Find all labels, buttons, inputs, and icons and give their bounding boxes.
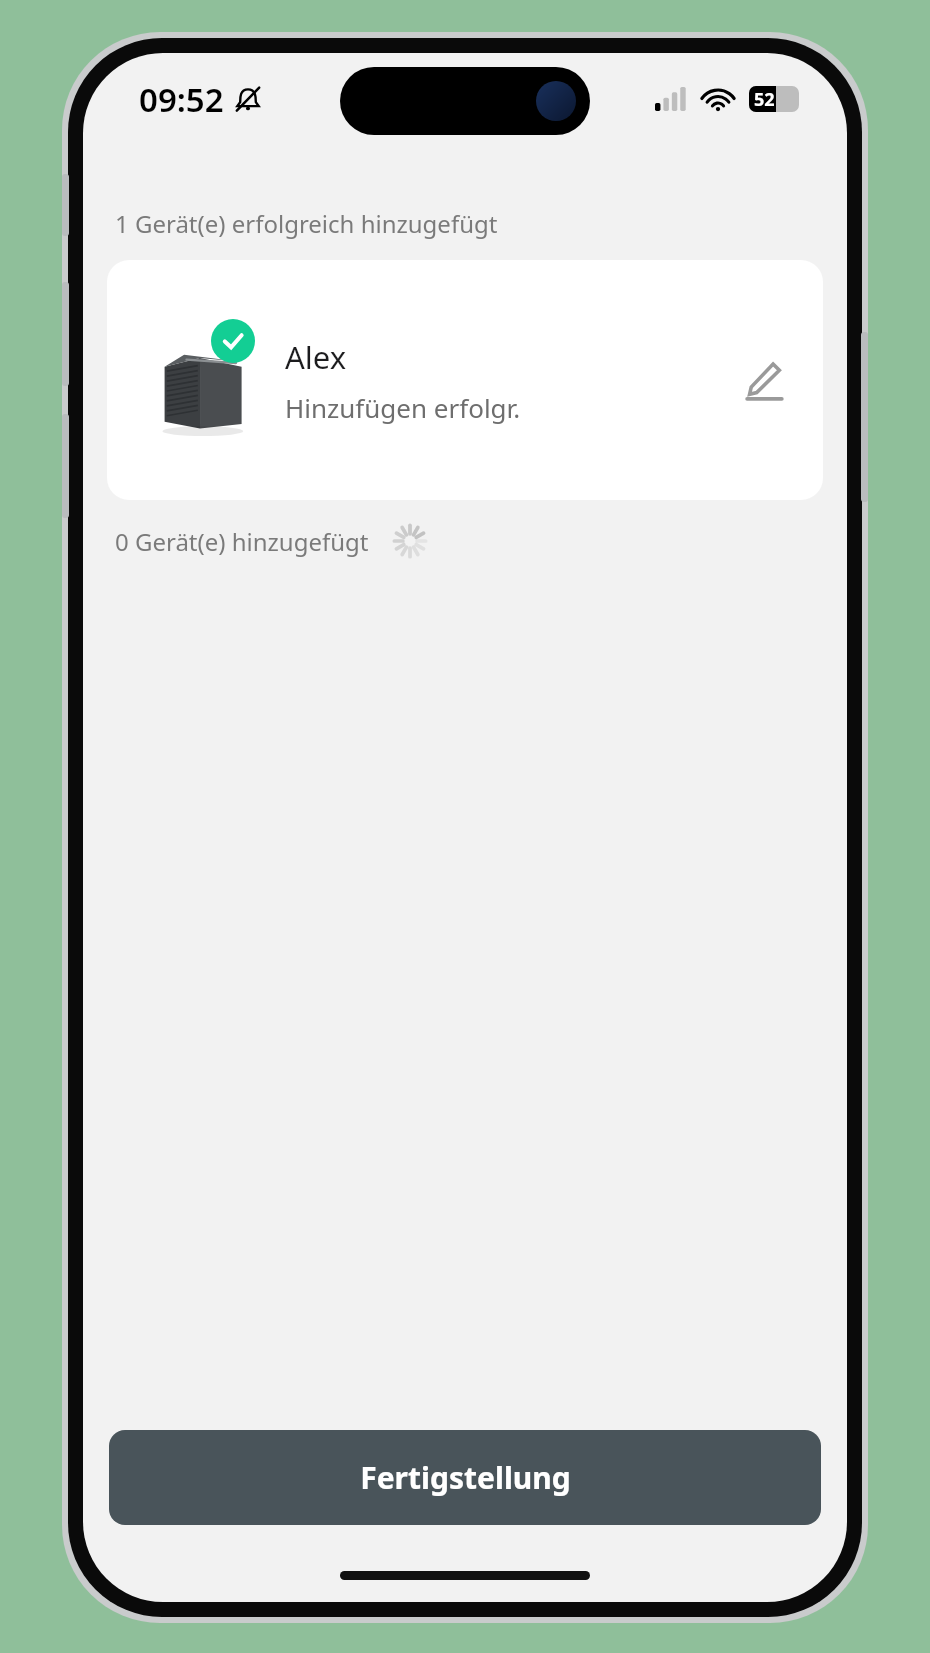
staticText: Fertigstellung	[360, 1457, 571, 1498]
staticText: 1 Gerät(e) erfolgreich hinzugefügt	[115, 207, 498, 240]
staticText: 09:52	[139, 77, 224, 122]
button[interactable]: Umbenennen	[735, 352, 791, 408]
staticText: Hinzufügen erfolgr.	[285, 390, 521, 425]
staticText: Alex	[285, 336, 347, 378]
button[interactable]: Alex	[107, 260, 823, 500]
button[interactable]: Fertigstellung	[109, 1430, 821, 1525]
staticText: 52	[754, 87, 775, 112]
staticText: 0 Gerät(e) hinzugefügt	[115, 525, 369, 558]
